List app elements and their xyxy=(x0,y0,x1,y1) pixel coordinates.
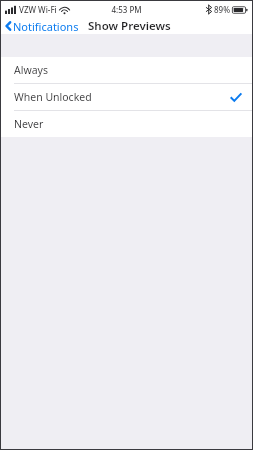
button[interactable]: When Unlocked xyxy=(1,84,252,110)
button[interactable]: Never xyxy=(1,111,252,137)
staticText: When Unlocked xyxy=(14,90,92,104)
staticText: 4:53 PM xyxy=(111,4,142,15)
other: Selected xyxy=(231,93,241,102)
staticText: Notifications xyxy=(13,19,79,32)
staticText: Always xyxy=(14,63,48,77)
other: Back to Notifications xyxy=(5,21,11,31)
button[interactable]: Back to Notifications xyxy=(1,17,85,34)
staticText: Never xyxy=(14,117,44,131)
staticText: Show Previews xyxy=(88,18,171,34)
staticText: VZW Wi-Fi xyxy=(19,4,57,15)
button[interactable]: Always xyxy=(1,57,252,83)
staticText: 89% xyxy=(214,4,230,15)
